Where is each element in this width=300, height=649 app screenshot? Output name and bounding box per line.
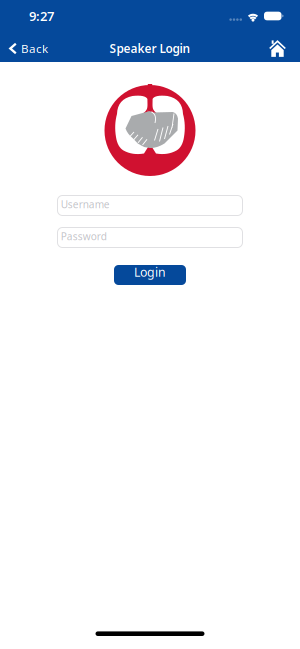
button[interactable]: Back bbox=[0, 41, 48, 56]
staticText: 9:27 bbox=[29, 7, 54, 25]
staticText: Back bbox=[21, 41, 48, 56]
staticText: Password bbox=[61, 229, 107, 243]
button[interactable]: Login bbox=[114, 265, 186, 285]
button[interactable]: Username bbox=[57, 195, 243, 216]
button[interactable]: Password bbox=[57, 227, 243, 248]
staticText: Login bbox=[134, 264, 166, 280]
button[interactable]: Home bbox=[269, 39, 300, 57]
staticText: Username bbox=[61, 197, 110, 211]
staticText: Speaker Login bbox=[109, 40, 190, 57]
